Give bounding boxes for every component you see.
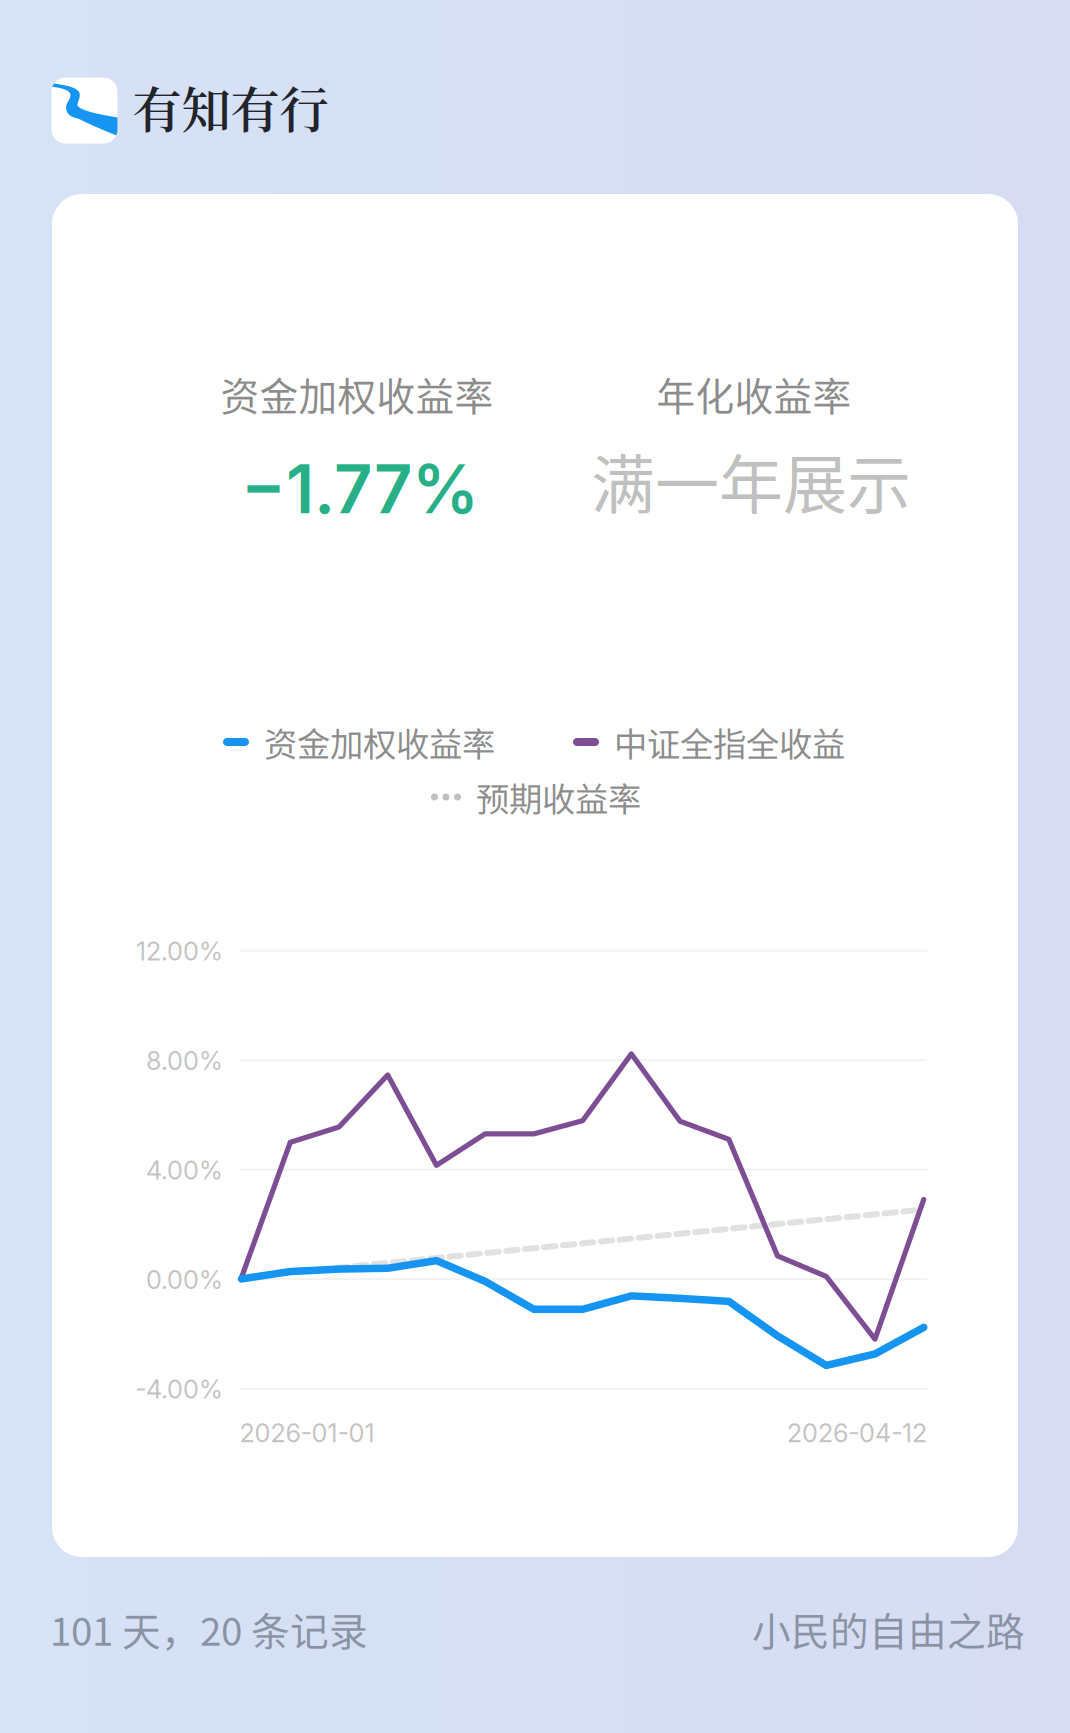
staticText: 年化收益率 [656,366,851,422]
staticText: 小民的自由之路 [752,1601,1025,1657]
staticText: 101 天，20 条记录 [50,1601,368,1657]
staticText: 4.00% [146,1155,223,1186]
staticText: −1.77% [241,449,479,529]
staticText: 12.00% [136,936,223,967]
staticText: 8.00% [146,1045,223,1076]
staticText: 预期收益率 [476,773,641,821]
staticText: 2026-01-01 [239,1418,374,1448]
staticText: 资金加权收益率 [220,366,493,422]
staticText: 中证全指全收益 [614,718,845,766]
staticText: 资金加权收益率 [264,718,495,766]
staticText: -4.00% [135,1374,223,1405]
staticText: 有知有行 [132,71,328,142]
staticText: 0.00% [146,1264,223,1295]
staticText: 2026-04-12 [787,1418,927,1448]
button[interactable]: 有知有行 [50,74,325,144]
staticText: 满一年展示 [591,434,911,526]
